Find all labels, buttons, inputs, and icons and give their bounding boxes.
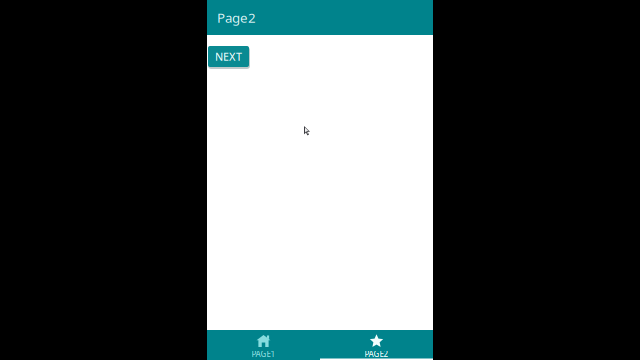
staticText: Page2 (217, 9, 256, 26)
button[interactable]: NEXT (208, 46, 251, 69)
staticText: PAGE1 (251, 349, 275, 359)
staticText: NEXT (215, 49, 242, 64)
button[interactable]: PAGE1 (207, 330, 320, 360)
staticText: PAGE2 (364, 349, 388, 359)
button[interactable]: PAGE2 (320, 330, 433, 360)
